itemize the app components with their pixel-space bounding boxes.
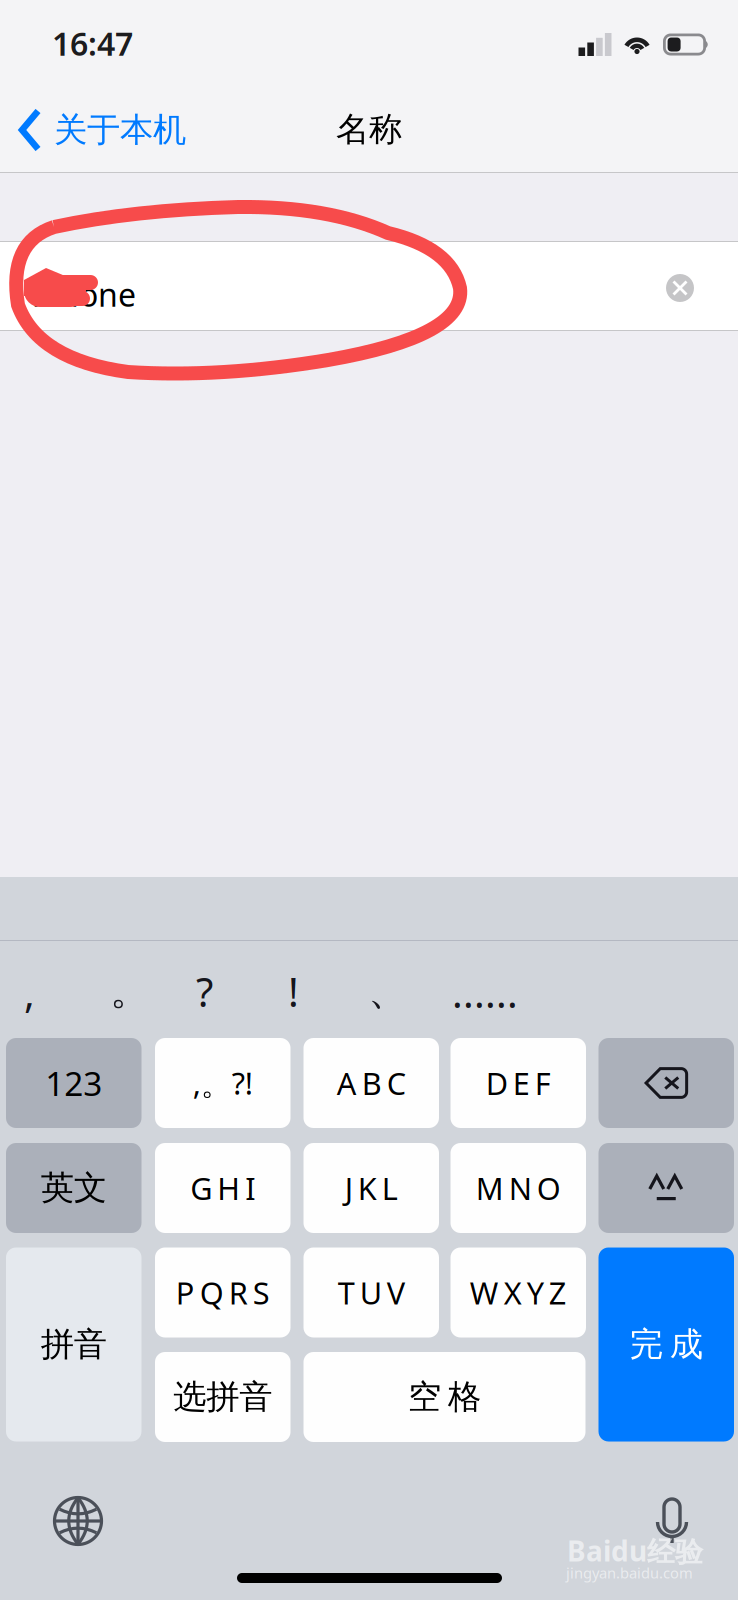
button[interactable]: 完 成 [598,1247,734,1441]
staticText: 关于本机 [54,109,186,150]
button[interactable]: Dictation [656,1498,688,1544]
button[interactable]: P Q R S [155,1247,290,1337]
staticText: W X Y Z [470,1272,567,1313]
staticText: jingyan.baidu.com [566,1563,693,1582]
staticText: 完 成 [630,1324,703,1365]
button[interactable]: T U V [303,1247,439,1337]
button[interactable]: 空 格 [303,1352,585,1442]
staticText: 16:47 [52,22,133,64]
button[interactable]: Emoticons [598,1143,734,1233]
button[interactable]: 123 [6,1038,141,1128]
staticText: ? [196,965,213,1018]
staticText: J K L [345,1168,398,1208]
staticText: T U V [338,1272,405,1313]
staticText: 选拼音 [173,1376,272,1417]
button[interactable]: 英文 [6,1143,141,1233]
staticText: , [24,966,35,1019]
button[interactable]: Delete [598,1038,734,1128]
staticText: ,。?! [193,1063,253,1103]
staticText: M N O [476,1168,561,1208]
staticText: 空 格 [408,1376,481,1417]
button[interactable]: D E F [450,1038,586,1128]
button[interactable]: W X Y Z [450,1247,586,1337]
staticText: G H I [190,1168,255,1208]
staticText: 123 [45,1061,102,1105]
button[interactable]: 拼音 [6,1247,141,1441]
button[interactable]: A B C [303,1038,439,1128]
button[interactable]: Clear text [656,264,704,312]
button[interactable]: J K L [303,1143,439,1233]
button[interactable]: 选拼音 [155,1352,290,1442]
staticText: ! [288,965,299,1018]
staticText: iPhone [32,273,136,315]
button[interactable]: ,。?! [155,1038,290,1128]
button[interactable]: M N O [450,1143,586,1233]
staticText: A B C [337,1063,406,1103]
staticText: D E F [486,1063,551,1103]
staticText: 拼音 [41,1324,107,1365]
staticText: 英文 [41,1167,107,1208]
staticText: Baidu经验 [567,1532,703,1569]
staticText: ...... [452,966,518,1019]
staticText: 。 [110,966,150,1015]
staticText: 、 [368,966,408,1015]
button[interactable]: Switch keyboard [53,1496,103,1546]
button[interactable]: G H I [155,1143,290,1233]
staticText: 名称 [336,109,402,150]
button[interactable]: 关于本机 [4,100,200,160]
staticText: P Q R S [176,1272,270,1313]
